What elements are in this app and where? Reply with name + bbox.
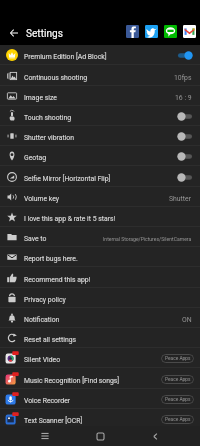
staticText: Internal Storage/Pictures/SilentCamera [103, 236, 192, 242]
button[interactable]: Shutter vibration [0, 126, 200, 146]
staticText: Peace Apps [165, 377, 191, 383]
button[interactable]: Touch shooting [0, 106, 200, 126]
staticText: Premium Edition [Ad Block] [24, 53, 107, 61]
button[interactable]: Share on Facebook [126, 25, 139, 38]
button[interactable]: Peace Apps [161, 354, 194, 363]
staticText: Touch shooting [24, 114, 72, 122]
button[interactable]: Back [6, 25, 21, 40]
button[interactable]: Continuous shooting [0, 66, 200, 86]
button[interactable]: Report bugs here. [0, 247, 200, 267]
staticText: Reset all settings [24, 336, 77, 344]
button[interactable]: Premium Edition [Ad Block] [0, 45, 200, 65]
button[interactable]: Music Recognition [Find songs] [0, 369, 200, 389]
button[interactable]: Reset all settings [0, 328, 200, 348]
staticText: Shutter [169, 195, 192, 203]
button[interactable]: Share on LINE [164, 25, 177, 38]
staticText: Peace Apps [165, 417, 191, 423]
staticText: Voice Recorder [24, 397, 71, 405]
button[interactable]: Geotag [0, 146, 200, 166]
staticText: 10fps [174, 74, 192, 82]
button[interactable]: Share by Gmail [183, 25, 196, 38]
staticText: Geotag [24, 154, 46, 162]
button[interactable]: Voice Recorder [0, 389, 200, 409]
staticText: I love this app & rate it 5 stars! [24, 215, 116, 223]
staticText: ON [182, 316, 192, 324]
staticText: Privacy policy [24, 296, 66, 304]
staticText: Music Recognition [Find songs] [24, 377, 120, 385]
button[interactable]: Silent Video [0, 348, 200, 368]
staticText: Notification [24, 316, 60, 324]
button[interactable]: I love this app & rate it 5 stars! [0, 207, 200, 227]
staticText: Save to [24, 235, 47, 243]
button[interactable]: Peace Apps [161, 375, 194, 384]
button[interactable]: Home [90, 426, 110, 446]
button[interactable]: Privacy policy [0, 288, 200, 308]
button[interactable]: Selfie Mirror [Horizontal Flip] [0, 167, 200, 187]
button[interactable]: Notification [0, 308, 200, 328]
button[interactable]: Recent apps [35, 426, 55, 446]
staticText: Peace Apps [165, 397, 191, 403]
staticText: Silent Video [24, 356, 61, 364]
staticText: Text Scanner [OCR] [24, 417, 83, 425]
staticText: Settings [26, 28, 63, 40]
staticText: Report bugs here. [24, 255, 78, 263]
staticText: Image size [24, 94, 57, 102]
staticText: Volume key [24, 195, 60, 203]
staticText: Shutter vibration [24, 134, 75, 142]
staticText: Recommend this app! [24, 276, 91, 284]
button[interactable]: Volume key [0, 187, 200, 207]
staticText: Peace Apps [165, 356, 191, 362]
button[interactable]: Peace Apps [161, 415, 194, 424]
button[interactable]: Peace Apps [161, 395, 194, 404]
staticText: Selfie Mirror [Horizontal Flip] [24, 175, 111, 183]
staticText: 16 : 9 [175, 94, 192, 102]
button[interactable]: Image size [0, 86, 200, 106]
staticText: Continuous shooting [24, 74, 88, 82]
button[interactable]: Back [145, 426, 165, 446]
button[interactable]: Save to [0, 227, 200, 247]
button[interactable]: Text Scanner [OCR] [0, 409, 200, 429]
button[interactable]: Recommend this app! [0, 268, 200, 288]
button[interactable]: Share on Twitter [145, 25, 158, 38]
